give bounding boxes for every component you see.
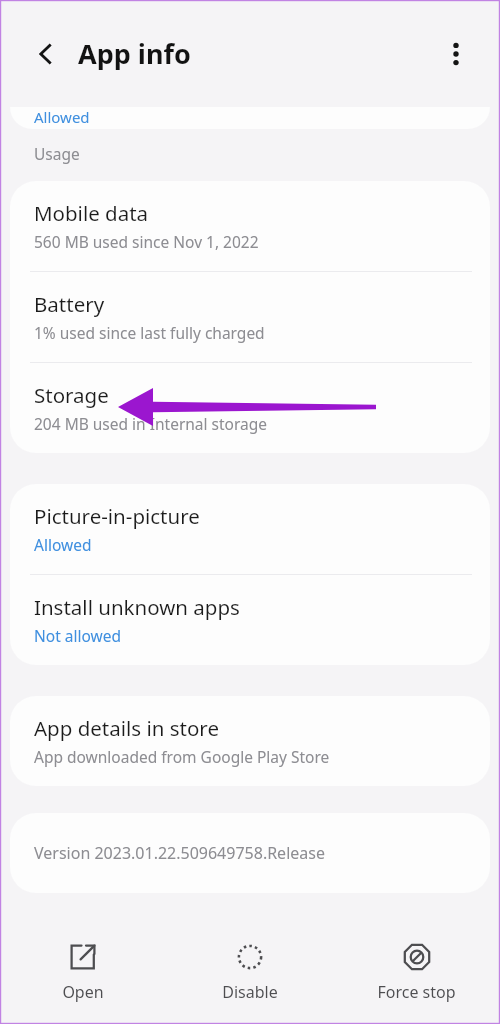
- button[interactable]: Force stop: [333, 934, 500, 1011]
- button[interactable]: Allowed: [10, 107, 490, 129]
- staticText: App info: [78, 35, 191, 72]
- button[interactable]: Mobile data: [10, 181, 490, 271]
- staticText: Battery: [34, 290, 105, 318]
- staticText: 204 MB used in Internal storage: [34, 413, 268, 434]
- staticText: Mobile data: [34, 199, 149, 227]
- staticText: Disable: [222, 981, 278, 1003]
- staticText: Not allowed: [34, 625, 122, 646]
- button[interactable]: Version 2023.01.22.509649758.Release: [10, 813, 490, 893]
- button[interactable]: Storage: [10, 363, 490, 453]
- button[interactable]: Back: [24, 32, 68, 76]
- staticText: Allowed: [34, 534, 92, 555]
- button[interactable]: More options: [434, 32, 478, 76]
- staticText: 560 MB used since Nov 1, 2022: [34, 231, 259, 252]
- staticText: Open: [62, 981, 104, 1003]
- staticText: Force stop: [377, 981, 456, 1003]
- button[interactable]: Battery: [10, 272, 490, 362]
- staticText: Version 2023.01.22.509649758.Release: [34, 842, 325, 864]
- staticText: Picture-in-picture: [34, 502, 200, 530]
- button[interactable]: Install unknown apps: [10, 575, 490, 665]
- staticText: 1% used since last fully charged: [34, 322, 265, 343]
- button[interactable]: App details in store: [10, 696, 490, 786]
- staticText: App downloaded from Google Play Store: [34, 746, 330, 767]
- button[interactable]: Picture-in-picture: [10, 484, 490, 574]
- staticText: Install unknown apps: [34, 593, 240, 621]
- staticText: App details in store: [34, 714, 219, 742]
- button[interactable]: Disable: [166, 934, 333, 1011]
- staticText: Storage: [34, 381, 109, 409]
- staticText: Allowed: [34, 107, 90, 127]
- staticText: Usage: [34, 143, 80, 164]
- button[interactable]: Open: [0, 934, 166, 1011]
